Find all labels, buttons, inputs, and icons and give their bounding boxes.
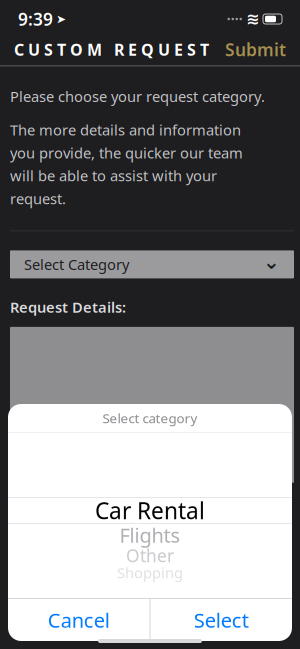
staticText: C U S T O M R E Q U E S T	[14, 39, 209, 60]
staticText: ➤	[56, 12, 66, 26]
staticText: ⌄	[263, 250, 280, 273]
button[interactable]: Select	[150, 599, 292, 641]
staticText: Cancel	[48, 607, 110, 633]
staticText: Car Rental	[95, 495, 205, 525]
button[interactable]: Select Category	[10, 250, 294, 278]
staticText: Flights	[119, 522, 180, 548]
staticText: Select	[194, 607, 249, 633]
staticText: Other	[126, 544, 174, 567]
button[interactable]: Submit	[211, 32, 286, 67]
staticText: ≋	[246, 10, 259, 28]
staticText: Submit	[225, 38, 286, 61]
button[interactable]: Cancel	[8, 599, 149, 641]
staticText: Select Category	[24, 255, 129, 274]
staticText: Shopping	[117, 563, 183, 582]
staticText: 9:39	[18, 7, 53, 30]
staticText: Request Details:	[10, 297, 126, 317]
staticText: Select category	[102, 409, 197, 427]
staticText: The more details and information you pro…	[10, 120, 243, 208]
staticText: Please choose your request category.	[10, 86, 265, 106]
